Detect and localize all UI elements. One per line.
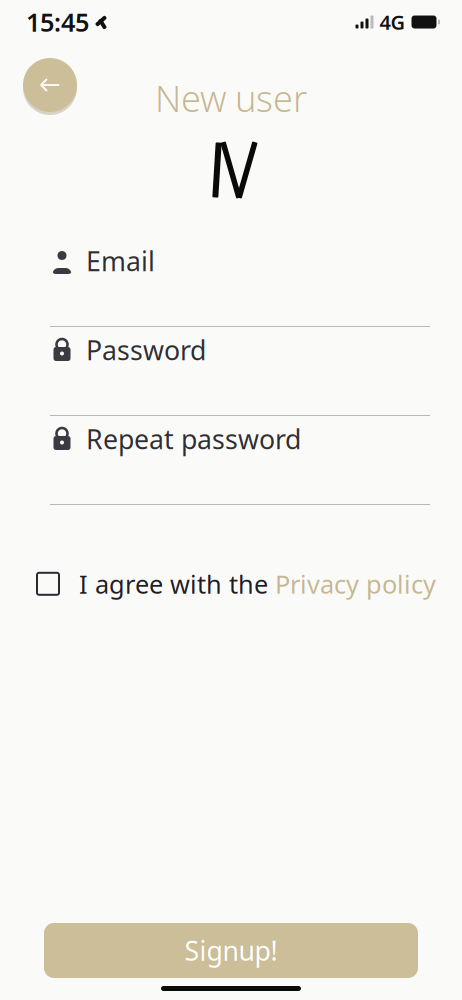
staticText: Password xyxy=(86,332,206,368)
staticText: I agree with the xyxy=(79,567,275,601)
button[interactable]: I agree with the Privacy policy xyxy=(33,569,63,599)
button[interactable]: Repeat password xyxy=(32,416,430,505)
button[interactable]: Back xyxy=(20,55,80,115)
button[interactable]: Email xyxy=(32,238,430,327)
staticText: 15:45 xyxy=(26,5,89,39)
staticText: 4G xyxy=(379,9,405,35)
button[interactable]: Privacy policy xyxy=(275,567,436,601)
button[interactable]: Signup! xyxy=(44,923,418,978)
staticText: Privacy policy xyxy=(275,567,436,601)
staticText: Signup! xyxy=(184,933,277,968)
button[interactable]: Password xyxy=(32,327,430,416)
staticText: Repeat password xyxy=(86,421,301,457)
staticText: Email xyxy=(86,243,155,279)
staticText: New user xyxy=(155,74,307,122)
